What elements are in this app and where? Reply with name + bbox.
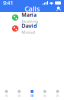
staticText: 9:41 (3, 0, 13, 7)
staticText: Tab (43, 94, 47, 97)
button[interactable]: Tab 1 (13, 88, 26, 99)
staticText: Incoming (21, 19, 37, 24)
button[interactable]: Tab 0 (0, 88, 13, 99)
button[interactable]: Maria (0, 12, 64, 23)
staticText: Tab (4, 94, 8, 97)
staticText: Calls (24, 5, 39, 13)
button[interactable]: David (0, 23, 64, 34)
staticText: Tab (17, 94, 21, 97)
button[interactable]: Tab 2 (26, 88, 38, 99)
button[interactable]: Tab 3 (38, 88, 51, 99)
button[interactable]: Tab 4 (51, 88, 64, 99)
staticText: Tab (30, 94, 34, 97)
button[interactable]: Contacts (54, 6, 63, 12)
staticText: Tab (56, 94, 60, 97)
staticText: Maria (21, 11, 36, 18)
staticText: Missed (21, 30, 34, 35)
staticText: David (21, 22, 36, 29)
